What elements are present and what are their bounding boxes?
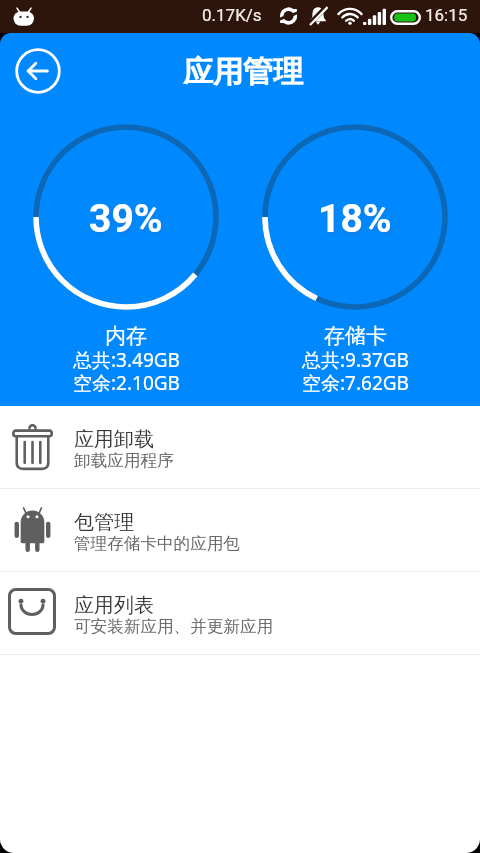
staticText: 卸载应用程序 [74, 450, 174, 471]
staticText: 包管理 [74, 510, 134, 535]
staticText: 总共:3.49GB [73, 347, 180, 373]
staticText: 16:15 [425, 5, 468, 25]
button[interactable]: 应用卸载 [0, 406, 480, 488]
button[interactable]: 包管理 [0, 489, 480, 571]
staticText: 空余:7.62GB [302, 370, 409, 396]
staticText: 18% [318, 196, 392, 242]
button[interactable]: 返回 [13, 46, 63, 96]
staticText: 管理存储卡中的应用包 [74, 533, 240, 554]
staticText: 应用管理 [183, 53, 303, 91]
button[interactable]: 应用列表 [0, 572, 480, 654]
staticText: 可安装新应用、并更新应用 [74, 616, 274, 637]
staticText: 空余:2.10GB [73, 370, 180, 396]
staticText: 总共:9.37GB [302, 347, 409, 373]
staticText: 应用卸载 [74, 427, 154, 452]
staticText: 应用列表 [74, 593, 154, 618]
staticText: 0.17K/s [202, 5, 262, 25]
staticText: 存储卡 [324, 323, 387, 349]
staticText: 内存 [105, 323, 147, 349]
staticText: 39% [89, 196, 163, 242]
